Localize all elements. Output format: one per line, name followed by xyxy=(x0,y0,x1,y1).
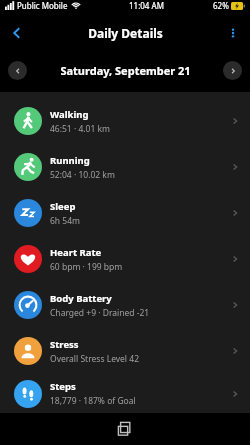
staticText: Daily Details xyxy=(88,25,163,41)
staticText: Public Mobile xyxy=(17,0,68,11)
staticText: Walking xyxy=(50,108,89,121)
button[interactable]: Back xyxy=(4,20,30,46)
staticText: 52:04 · 10.02 km xyxy=(50,169,115,181)
staticText: Charged +9 · Drained -21 xyxy=(50,307,150,319)
staticText: 6h 54m xyxy=(50,215,80,227)
button[interactable]: More options xyxy=(220,20,246,46)
staticText: 60 bpm · 199 bpm xyxy=(50,261,123,273)
button[interactable]: Recent apps xyxy=(114,418,136,440)
button[interactable]: Previous day xyxy=(8,61,27,80)
staticText: Heart Rate xyxy=(50,246,102,259)
staticText: Stress xyxy=(50,338,79,351)
staticText: Steps xyxy=(50,380,76,393)
button[interactable]: Steps xyxy=(0,374,250,413)
button[interactable]: Walking xyxy=(0,98,250,144)
staticText: Sleep xyxy=(50,200,76,213)
button[interactable]: Body Battery xyxy=(0,282,250,328)
button[interactable]: Heart Rate xyxy=(0,236,250,282)
staticText: Running xyxy=(50,154,90,167)
button[interactable]: Sleep xyxy=(0,190,250,236)
button[interactable]: Stress xyxy=(0,328,250,374)
button[interactable]: Running xyxy=(0,144,250,190)
staticText: 18,779 · 187% of Goal xyxy=(50,395,136,407)
button[interactable]: Next day xyxy=(223,61,242,80)
staticText: Body Battery xyxy=(50,292,112,305)
staticText: 62% xyxy=(213,0,229,11)
staticText: 46:51 · 4.01 km xyxy=(50,123,110,135)
staticText: 11:04 AM xyxy=(129,0,164,11)
staticText: Saturday, September 21 xyxy=(60,63,191,78)
staticText: Overall Stress Level 42 xyxy=(50,353,139,365)
